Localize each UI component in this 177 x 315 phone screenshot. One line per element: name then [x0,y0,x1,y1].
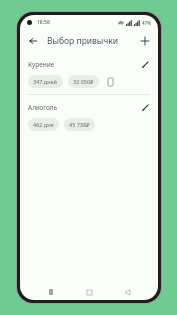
staticText: 462 дня [33,121,54,128]
button[interactable]: 462 дня [28,118,59,131]
button[interactable]: Home [82,285,96,299]
button[interactable]: 32 050₽ [68,75,99,88]
staticText: 45 738₽ [69,121,90,128]
staticText: Курение [28,60,55,69]
button[interactable]: Курение [20,52,158,94]
button[interactable]: Back [25,33,41,49]
button[interactable]: 45 738₽ [64,118,95,131]
staticText: Выбор привычки [47,35,119,47]
staticText: 47% [142,20,151,26]
button[interactable]: Back [120,285,134,299]
button[interactable]: Edit Курение [138,57,152,71]
staticText: Алкоголь [28,103,58,112]
staticText: 32 050₽ [73,78,94,85]
button[interactable]: Edit Алкоголь [138,100,152,114]
button[interactable]: Алкоголь [20,95,158,137]
button[interactable]: Device [104,76,116,88]
button[interactable]: 347 дней [28,75,63,88]
button[interactable]: Recents [44,285,58,299]
button[interactable]: Add habit [137,33,153,49]
staticText: 347 дней [33,78,58,85]
staticText: 18:58 [37,19,50,26]
